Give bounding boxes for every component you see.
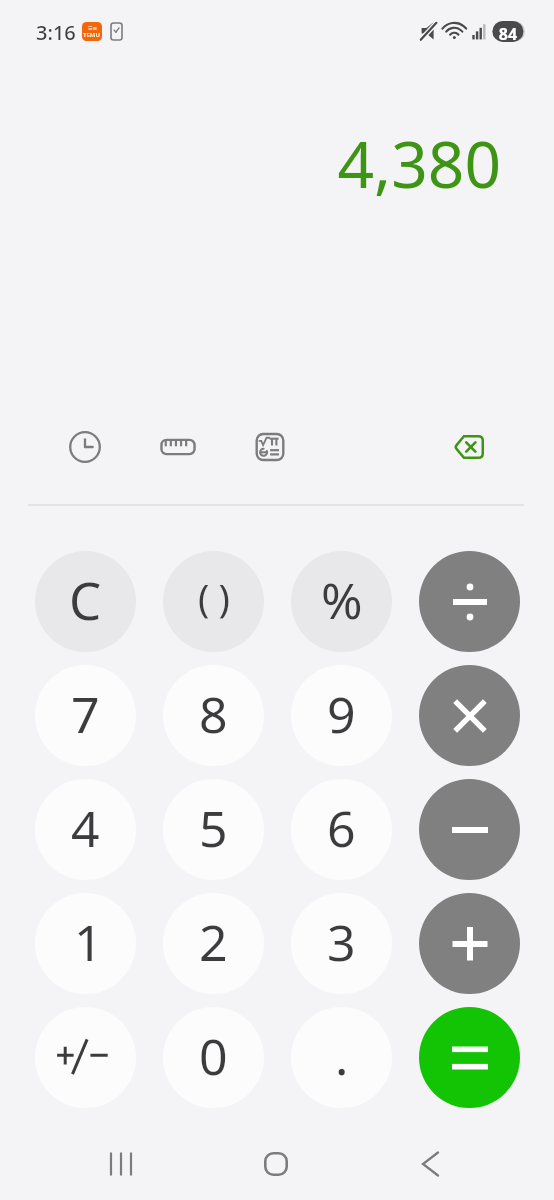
staticText: 7 [71, 680, 100, 748]
button[interactable]: % [291, 551, 392, 652]
button[interactable]: Back [395, 1140, 467, 1188]
staticText: 3:16 [36, 19, 76, 46]
button[interactable]: Minus [419, 779, 520, 880]
button[interactable]: 7 [35, 665, 136, 766]
button[interactable]: Equals [419, 1007, 520, 1108]
button[interactable]: History [49, 411, 121, 483]
button[interactable]: Backspace [433, 411, 505, 483]
button[interactable]: C [35, 551, 136, 652]
staticText: () [198, 571, 239, 623]
button[interactable]: Scientific calculator [234, 411, 306, 483]
staticText: 4,380 [0, 120, 501, 207]
staticText: . [335, 1022, 349, 1090]
button[interactable]: Unit converter [142, 411, 214, 483]
staticText: ☰≡ [88, 25, 97, 31]
button[interactable]: 0 [163, 1007, 264, 1108]
staticText: 4 [71, 794, 100, 862]
button[interactable]: 3 [291, 893, 392, 994]
staticText: 8 [199, 680, 228, 748]
button[interactable]: Divide [419, 551, 520, 652]
staticText: 9 [327, 680, 356, 748]
staticText: 5 [199, 794, 228, 862]
button[interactable]: 8 [163, 665, 264, 766]
staticText: 0 [199, 1022, 228, 1090]
button[interactable]: () [163, 551, 264, 652]
button[interactable]: . [291, 1007, 392, 1108]
staticText: 84 [497, 23, 519, 45]
button[interactable]: 5 [163, 779, 264, 880]
staticText: 2 [199, 908, 228, 976]
button[interactable]: Recents [85, 1140, 157, 1188]
staticText: % [321, 566, 363, 634]
staticText: TEMU [83, 31, 101, 39]
button[interactable]: Plus [419, 893, 520, 994]
staticText: C [69, 565, 102, 634]
button[interactable]: Multiply [419, 665, 520, 766]
button[interactable]: Home [240, 1140, 312, 1188]
button[interactable]: 1 [35, 893, 136, 994]
button[interactable]: 4 [35, 779, 136, 880]
button[interactable]: 2 [163, 893, 264, 994]
button[interactable]: 9 [291, 665, 392, 766]
button[interactable]: Plus minus [35, 1007, 136, 1108]
staticText: 3 [327, 908, 356, 976]
staticText: 6 [327, 794, 356, 862]
staticText: 1 [74, 908, 103, 976]
button[interactable]: 6 [291, 779, 392, 880]
